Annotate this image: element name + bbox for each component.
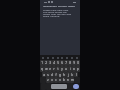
- staticText: w: [45, 67, 48, 71]
- staticText: 1: [41, 61, 43, 65]
- staticText: f: [55, 73, 57, 77]
- staticText: s: [47, 73, 49, 77]
- button[interactable]: o: [72, 66, 76, 72]
- button[interactable]: l: [74, 72, 78, 77]
- staticText: t: [57, 67, 59, 71]
- staticText: h: [63, 73, 65, 77]
- button[interactable]: i: [68, 66, 72, 72]
- staticText: j: [68, 73, 69, 77]
- button[interactable]: z: [46, 77, 50, 83]
- button[interactable]: 6: [60, 60, 64, 66]
- button[interactable]: 2: [44, 60, 48, 66]
- staticText: x: [51, 78, 53, 82]
- button[interactable]: e: [48, 66, 52, 72]
- staticText: 8: [69, 61, 71, 65]
- staticText: r: [53, 67, 55, 71]
- button[interactable]: 4: [52, 60, 56, 66]
- button[interactable]: b: [62, 77, 66, 83]
- button[interactable]: Enter: [73, 84, 79, 89]
- staticText: Subject line here now The quick brown fo…: [43, 8, 74, 17]
- staticText: 3: [49, 61, 51, 65]
- staticText: n: [67, 78, 69, 82]
- staticText: b: [63, 78, 65, 82]
- staticText: p: [77, 67, 79, 71]
- button[interactable]: f: [54, 72, 58, 77]
- staticText: 4: [53, 61, 55, 65]
- button[interactable]: t: [56, 66, 60, 72]
- staticText: z: [47, 78, 49, 82]
- staticText: Attachment Format Insert Layout Settings…: [43, 4, 80, 7]
- staticText: 9: [73, 61, 75, 65]
- button[interactable]: 3: [48, 60, 52, 66]
- staticText: 6: [61, 61, 63, 65]
- button[interactable]: j: [66, 72, 70, 77]
- button[interactable]: 5: [56, 60, 60, 66]
- button[interactable]: p: [76, 66, 80, 72]
- button[interactable]: v: [58, 77, 62, 83]
- staticText: o: [73, 67, 75, 71]
- button[interactable]: m: [70, 77, 74, 83]
- button[interactable]: d: [50, 72, 54, 77]
- staticText: 5: [57, 61, 59, 65]
- staticText: k: [71, 73, 73, 77]
- staticText: c: [55, 78, 57, 82]
- button[interactable]: 1: [40, 60, 44, 66]
- button[interactable]: r: [52, 66, 56, 72]
- staticText: l: [76, 73, 77, 77]
- staticText: g: [59, 73, 61, 77]
- button[interactable]: Attachment Format Insert Layout Settings…: [43, 4, 80, 7]
- staticText: m: [71, 78, 74, 82]
- button[interactable]: q: [40, 66, 44, 72]
- staticText: a: [43, 73, 45, 77]
- button[interactable]: c: [54, 77, 58, 83]
- button[interactable]: s: [46, 72, 50, 77]
- button[interactable]: Space: [51, 84, 67, 89]
- staticText: 7: [65, 61, 67, 65]
- button[interactable]: 8: [68, 60, 72, 66]
- staticText: y: [61, 67, 63, 71]
- staticText: 2: [45, 61, 47, 65]
- staticText: d: [51, 73, 53, 77]
- button[interactable]: a: [42, 72, 46, 77]
- staticText: q: [41, 67, 43, 71]
- button[interactable]: y: [60, 66, 64, 72]
- button[interactable]: 7: [64, 60, 68, 66]
- staticText: 0: [77, 61, 79, 65]
- button[interactable]: h: [62, 72, 66, 77]
- staticText: e: [49, 67, 51, 71]
- button[interactable]: u: [64, 66, 68, 72]
- staticText: u: [65, 67, 67, 71]
- staticText: i: [70, 67, 71, 71]
- button[interactable]: n: [66, 77, 70, 83]
- button[interactable]: g: [58, 72, 62, 77]
- button[interactable]: k: [70, 72, 74, 77]
- button[interactable]: w: [44, 66, 48, 72]
- button[interactable]: 0: [76, 60, 80, 66]
- button[interactable]: x: [50, 77, 54, 83]
- staticText: v: [59, 78, 61, 82]
- button[interactable]: 9: [72, 60, 76, 66]
